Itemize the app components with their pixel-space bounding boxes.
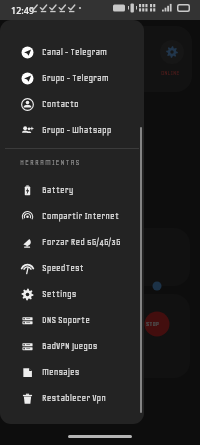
staticText: BadVPN Juegos (42, 341, 98, 351)
staticText: Restablecer Vpn (42, 393, 106, 403)
staticText: Grupo - Telegram (42, 73, 109, 83)
button[interactable]: Grupo - Whatsapp (0, 117, 144, 143)
button[interactable]: SpeedTest (0, 255, 144, 281)
button[interactable]: DNS Soporte (0, 307, 144, 333)
button[interactable]: Settings (0, 281, 144, 307)
button[interactable]: Compartir Internet (0, 203, 144, 229)
staticText: Forzar Red 5G/4G/3G (42, 237, 121, 247)
button[interactable]: BadVPN Juegos (0, 333, 144, 359)
staticText: Canal - Telegram (42, 47, 108, 57)
staticText: Mensajes (42, 367, 80, 377)
staticText: Compartir Internet (42, 211, 119, 221)
staticText: Settings (42, 289, 77, 299)
staticText: Contacto (42, 99, 79, 109)
button[interactable]: Mensajes (0, 359, 144, 385)
staticText: HERRAMIENTAS (20, 158, 81, 167)
button[interactable]: Forzar Red 5G/4G/3G (0, 229, 144, 255)
staticText: Grupo - Whatsapp (42, 125, 112, 135)
button[interactable]: Canal - Telegram (0, 39, 144, 65)
staticText: SpeedTest (42, 263, 84, 273)
staticText: 12:49 (11, 4, 35, 16)
staticText: ONLINE (161, 69, 180, 76)
button[interactable]: Contacto (0, 91, 144, 117)
staticText: STOP (146, 320, 160, 327)
button[interactable]: Grupo - Telegram (0, 65, 144, 91)
button[interactable]: Battery (0, 177, 144, 203)
staticText: Battery (42, 185, 74, 195)
button[interactable]: Restablecer Vpn (0, 385, 144, 411)
staticText: DNS Soporte (42, 315, 90, 325)
